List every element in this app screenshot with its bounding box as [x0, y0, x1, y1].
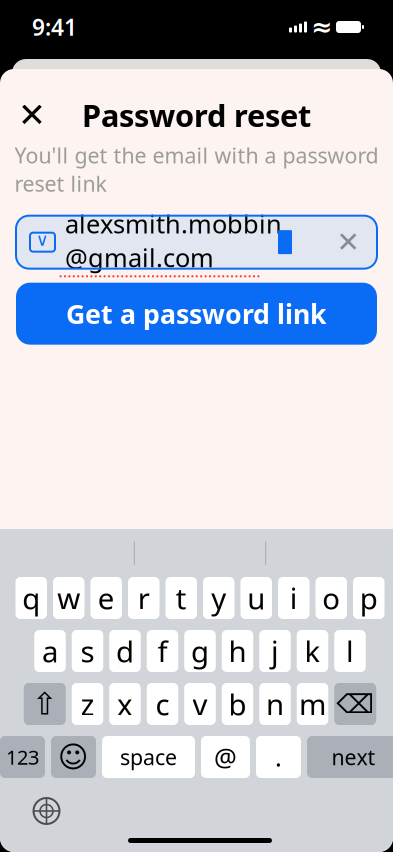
- button[interactable]: Emoji: [51, 736, 96, 778]
- button[interactable]: q: [15, 577, 47, 619]
- staticText: Password reset: [82, 95, 311, 135]
- staticText: c: [155, 684, 169, 723]
- staticText: space: [120, 743, 177, 771]
- staticText: b: [228, 684, 246, 723]
- button[interactable]: f: [147, 630, 178, 672]
- staticText: s: [80, 631, 94, 670]
- button[interactable]: t: [165, 577, 197, 619]
- staticText: f: [157, 631, 167, 670]
- button[interactable]: l: [334, 630, 366, 672]
- staticText: ≈: [311, 13, 332, 41]
- staticText: r: [138, 578, 150, 617]
- staticText: 123: [6, 744, 39, 770]
- button[interactable]: e: [90, 577, 122, 619]
- button[interactable]: o: [315, 577, 347, 619]
- button[interactable]: h: [222, 630, 253, 672]
- button[interactable]: b: [222, 683, 253, 725]
- button[interactable]: Next keyboard: [23, 788, 69, 834]
- button[interactable]: Close: [14, 97, 50, 133]
- staticText: n: [266, 684, 284, 723]
- button[interactable]: z: [72, 683, 103, 725]
- staticText: l: [346, 631, 354, 670]
- button[interactable]: a: [34, 630, 66, 672]
- button[interactable]: 123: [0, 736, 45, 778]
- button[interactable]: @: [201, 736, 250, 778]
- button[interactable]: r: [128, 577, 159, 619]
- button[interactable]: w: [53, 577, 84, 619]
- button[interactable]: n: [259, 683, 291, 725]
- button[interactable]: u: [240, 577, 272, 619]
- button[interactable]: Clear text: [333, 227, 363, 257]
- button[interactable]: space: [102, 736, 195, 778]
- button[interactable]: next: [307, 736, 393, 778]
- staticText: 9:41: [32, 12, 77, 42]
- button[interactable]: g: [184, 630, 216, 672]
- button[interactable]: m: [297, 683, 328, 725]
- staticText: p: [360, 578, 378, 617]
- staticText: @: [214, 740, 237, 774]
- staticText: alexsmith.mobbin@gmail.com: [65, 207, 282, 274]
- button[interactable]: c: [147, 683, 178, 725]
- staticText: x: [117, 684, 133, 723]
- staticText: o: [322, 578, 340, 617]
- staticText: a: [42, 631, 58, 670]
- staticText: k: [304, 631, 320, 670]
- staticText: ✕: [18, 96, 46, 134]
- staticText: t: [176, 578, 187, 617]
- staticText: .: [275, 740, 282, 774]
- button[interactable]: i: [278, 577, 309, 619]
- button[interactable]: v: [184, 683, 216, 725]
- staticText: y: [211, 578, 226, 617]
- button[interactable]: p: [353, 577, 384, 619]
- button[interactable]: y: [203, 577, 234, 619]
- staticText: w: [57, 578, 80, 617]
- button[interactable]: d: [109, 630, 141, 672]
- staticText: q: [22, 578, 40, 617]
- button[interactable]: Shift: [24, 683, 66, 725]
- button[interactable]: j: [259, 630, 291, 672]
- button[interactable]: .: [256, 736, 301, 778]
- staticText: h: [228, 631, 246, 670]
- staticText: Get a password link: [66, 296, 327, 331]
- staticText: d: [116, 631, 134, 670]
- staticText: ⌫: [336, 689, 374, 719]
- staticText: ✕: [336, 226, 359, 258]
- button[interactable]: x: [109, 683, 141, 725]
- staticText: m: [299, 684, 326, 723]
- staticText: ∨: [36, 230, 49, 249]
- staticText: g: [191, 631, 209, 670]
- staticText: e: [98, 578, 115, 617]
- staticText: z: [80, 684, 94, 723]
- staticText: ☺: [58, 740, 89, 774]
- staticText: u: [247, 578, 265, 617]
- staticText: v: [192, 684, 207, 723]
- staticText: i: [290, 578, 298, 617]
- button[interactable]: Get a password link: [16, 283, 377, 345]
- staticText: ⇧: [32, 687, 58, 721]
- button[interactable]: Delete: [334, 683, 376, 725]
- staticText: You'll get the email with a password res…: [14, 141, 378, 198]
- staticText: j: [271, 631, 279, 670]
- button[interactable]: s: [72, 630, 103, 672]
- button[interactable]: k: [297, 630, 328, 672]
- staticText: next: [331, 743, 375, 771]
